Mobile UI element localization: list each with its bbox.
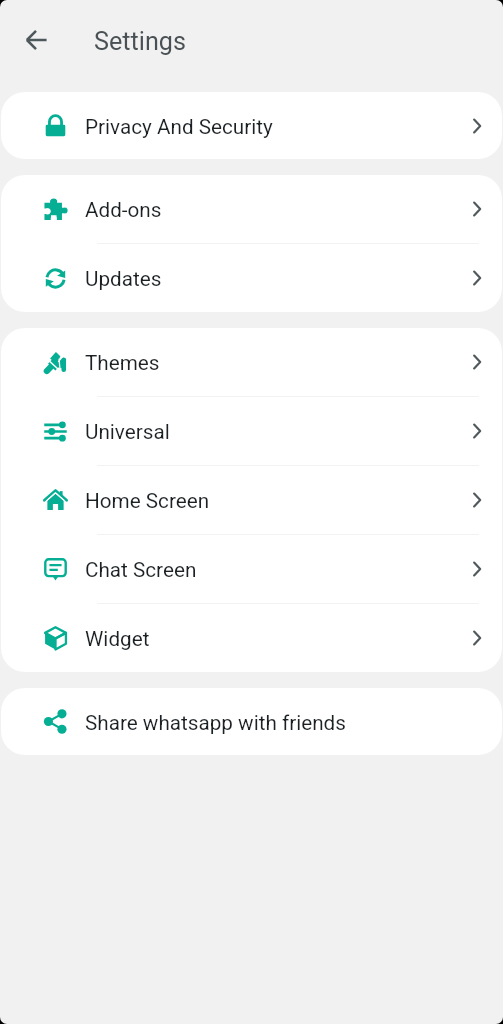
staticText: Add-ons: [85, 198, 162, 222]
button[interactable]: Privacy And Security: [1, 92, 502, 159]
button[interactable]: Back: [12, 16, 60, 64]
staticText: Themes: [85, 351, 160, 375]
staticText: Universal: [85, 420, 170, 444]
staticText: Settings: [94, 27, 186, 57]
button[interactable]: Widget: [1, 604, 502, 672]
staticText: Chat Screen: [85, 558, 197, 582]
button[interactable]: Universal: [1, 397, 502, 465]
button[interactable]: Add-ons: [1, 175, 502, 243]
button[interactable]: Share whatsapp with friends: [1, 688, 502, 755]
button[interactable]: Themes: [1, 328, 502, 396]
button[interactable]: Updates: [1, 244, 502, 312]
staticText: Widget: [85, 627, 150, 651]
button[interactable]: Home Screen: [1, 466, 502, 534]
staticText: Updates: [85, 267, 162, 291]
button[interactable]: Chat Screen: [1, 535, 502, 603]
staticText: Privacy And Security: [85, 115, 273, 139]
staticText: Share whatsapp with friends: [85, 711, 346, 735]
staticText: Home Screen: [85, 489, 210, 513]
